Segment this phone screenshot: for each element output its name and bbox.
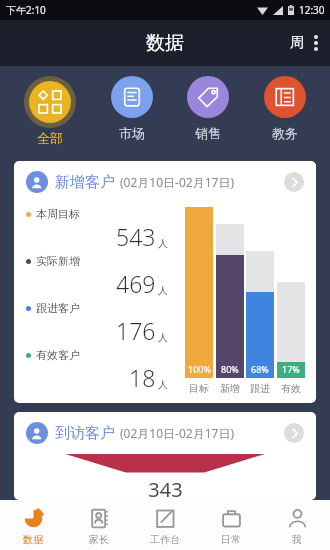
staticText: 新增客户 [55, 173, 115, 192]
staticText: 家长 [89, 533, 109, 546]
button[interactable]: Details [284, 423, 304, 443]
button[interactable]: 新增客户 [14, 161, 316, 203]
staticText: 教务 [272, 125, 298, 141]
staticText: 有效 [281, 382, 301, 395]
button[interactable]: 数据 [0, 500, 66, 550]
staticText: 跟进 [250, 382, 270, 395]
staticText: 我 [292, 533, 302, 546]
button[interactable]: 工作台 [132, 500, 198, 550]
staticText: 实际新增 [36, 254, 80, 268]
staticText: 18 [129, 362, 156, 393]
button[interactable]: 我 [264, 500, 330, 550]
staticText: 80% [221, 363, 239, 375]
staticText: 新增 [220, 382, 240, 395]
staticText: 数据 [146, 31, 184, 55]
staticText: 有效客户 [36, 348, 80, 362]
staticText: 到访客户 [55, 424, 115, 443]
button[interactable]: 到访客户 [14, 412, 316, 454]
staticText: 目标 [189, 382, 209, 395]
staticText: 176 [116, 315, 156, 346]
staticText: 68% [251, 363, 269, 375]
staticText: 周 [290, 34, 304, 52]
staticText: 跟进客户 [36, 301, 80, 315]
staticText: 人 [158, 378, 168, 391]
staticText: 数据 [23, 533, 43, 546]
button[interactable]: Details [284, 172, 304, 192]
staticText: 下午2:10 [6, 3, 46, 17]
button[interactable]: 市场 [101, 74, 163, 143]
staticText: 市场 [119, 125, 145, 141]
staticText: 日常 [221, 533, 241, 546]
button[interactable]: 家长 [66, 500, 132, 550]
staticText: 工作台 [150, 533, 180, 546]
staticText: 100% [188, 363, 211, 375]
staticText: 人 [158, 237, 168, 250]
button[interactable]: 教务 [254, 74, 316, 143]
staticText: 343 [148, 476, 183, 500]
button[interactable]: More options [308, 31, 324, 55]
staticText: 12:30 [299, 3, 325, 17]
staticText: (02月10日-02月17日) [120, 174, 234, 190]
staticText: 543 [116, 221, 156, 252]
staticText: 469 [116, 268, 156, 299]
button[interactable]: 周 [286, 30, 308, 56]
button[interactable]: 销售 [177, 74, 239, 143]
staticText: 销售 [195, 125, 221, 141]
staticText: 17% [282, 363, 300, 375]
staticText: (02月10日-02月17日) [120, 425, 234, 441]
button[interactable]: 日常 [198, 500, 264, 550]
staticText: 本周目标 [36, 207, 80, 221]
staticText: 全部 [37, 130, 63, 146]
button[interactable]: 全部 [14, 74, 86, 148]
staticText: 人 [158, 284, 168, 297]
staticText: 人 [158, 331, 168, 344]
